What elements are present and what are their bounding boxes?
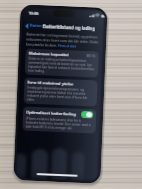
button[interactable]: Evne til maksimal ytelse	[24, 77, 98, 106]
button[interactable]: Optimalisert batterilading	[81, 111, 93, 118]
staticText: 80 %	[86, 53, 96, 58]
staticText: iPhone-en lærer ladevanene dine for å fo…	[25, 117, 93, 131]
staticText: Evne til maksimal ytelse	[27, 80, 74, 86]
button[interactable]: Optimalisert batterilading	[22, 106, 96, 133]
staticText: Optimalisert batterilading	[26, 110, 76, 117]
button[interactable]: Batteri	[25, 21, 44, 30]
staticText: Dette er en måling av batterikapasiteten…	[28, 57, 95, 75]
staticText: Innebygde dynamiske programvare- og mask…	[27, 86, 94, 104]
staticText: Maksimum kapasitet	[29, 51, 70, 57]
staticText: Batteritilstand og lading	[43, 23, 96, 31]
button[interactable]: Batteriet har en begrenset levetid, og y…	[26, 31, 100, 49]
staticText: 10:06	[28, 11, 39, 16]
staticText: Batteri	[30, 23, 43, 29]
button[interactable]: Maksimum kapasitet	[25, 48, 99, 77]
